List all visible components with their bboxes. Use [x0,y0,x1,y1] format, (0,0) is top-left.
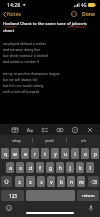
staticText: p [94,151,97,157]
staticText: okay [12,138,21,143]
button[interactable]: e [21,148,29,159]
button[interactable]: m [77,176,85,187]
staticText: f [39,165,41,171]
staticText: and we were doing fine [3,47,41,52]
staticText: w [13,151,17,157]
button[interactable]: q [1,148,9,159]
staticText: we try to win the champions league [3,71,60,76]
button[interactable]: z [15,176,24,187]
staticText: s [19,165,22,171]
button[interactable]: p [91,148,99,159]
button[interactable]: More [70,10,78,18]
staticText: g [49,165,52,171]
staticText: l [89,165,91,171]
button[interactable]: c [37,176,45,187]
button[interactable]: return [77,190,99,201]
staticText: e [24,151,27,157]
button[interactable]: okay [0,135,32,146]
button[interactable]: Checklist [41,126,49,134]
staticText: b [60,179,63,185]
button[interactable]: Backspace [88,176,99,187]
button[interactable]: a [6,162,14,173]
button[interactable]: Table [11,126,19,134]
button[interactable]: Close keyboard [86,126,94,134]
button[interactable]: b [57,176,65,187]
button[interactable]: Markup [71,126,79,134]
button[interactable]: j [66,162,74,173]
staticText: y [54,151,57,157]
staticText: u [64,151,67,157]
button[interactable]: f [36,162,44,173]
staticText: 4G [81,2,87,8]
staticText: a [9,165,12,171]
button[interactable]: r [31,148,39,159]
button[interactable]: h [56,162,64,173]
staticText: x [29,179,32,185]
button[interactable]: l [86,162,94,173]
staticText: but we will always fail [3,77,38,82]
staticText: d [29,165,32,171]
staticText: v [50,179,53,185]
staticText: t [44,151,46,157]
staticText: m [79,179,84,185]
staticText: Hoxland Chant to the same tune of jabocr… [3,21,97,34]
staticText: n [70,179,73,185]
staticText: k [79,165,82,171]
staticText: oh [81,138,86,143]
button[interactable]: yeah [33,135,66,146]
button[interactable]: w [11,148,19,159]
staticText: i [74,151,76,157]
staticText: h [59,165,62,171]
button[interactable]: oh [67,135,100,146]
staticText: j [69,165,71,171]
button[interactable]: n [67,176,75,187]
button[interactable]: d [26,162,34,173]
staticText: z [18,179,21,185]
staticText: Notes [7,11,21,17]
button[interactable]: Shift [1,176,12,187]
staticText: but sheik monsour is looked [3,53,49,58]
button[interactable]: u [61,148,69,159]
staticText: return [82,193,95,199]
button[interactable]: y [51,148,59,159]
staticText: c [40,179,43,185]
staticText: we played without a striker [3,41,47,46]
staticText: r [34,151,36,157]
staticText: with a fuck off ponytail [3,89,40,94]
button[interactable]: o [81,148,89,159]
staticText: q [4,151,7,157]
button[interactable]: Camera [56,126,64,134]
staticText: and words a number 9 [3,59,39,64]
button[interactable]: Text format [26,126,34,134]
staticText: Done [82,11,95,17]
button[interactable]: 123 [1,190,24,201]
button[interactable]: x [26,176,35,187]
button[interactable]: Notes [0,9,25,19]
staticText: o [84,151,87,157]
button[interactable]: k [76,162,84,173]
button[interactable]: g [46,162,54,173]
button[interactable]: Done [81,9,96,19]
button[interactable]: s [16,162,24,173]
staticText: 123 [9,193,17,199]
button[interactable]: Emoji [5,204,13,212]
button[interactable]: i [71,148,79,159]
button[interactable]: Dictate [87,204,95,212]
button[interactable]: t [41,148,49,159]
staticText: 14:28 [7,1,21,8]
staticText: yeah [45,138,55,143]
staticText: but he's our nordic viking [3,83,44,88]
button[interactable]: v [47,176,55,187]
button[interactable] [26,190,75,201]
